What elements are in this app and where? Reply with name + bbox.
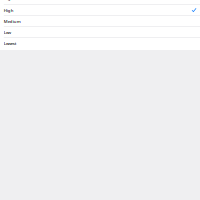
staticText: Highest xyxy=(4,0,20,1)
staticText: High xyxy=(4,7,14,13)
button[interactable]: Highest xyxy=(0,0,200,5)
button[interactable]: Low xyxy=(0,27,200,38)
button[interactable]: Lowest xyxy=(0,38,200,50)
staticText: Lowest xyxy=(4,40,17,46)
staticText: Low xyxy=(4,29,11,35)
button[interactable]: Medium xyxy=(0,16,200,27)
staticText: Medium xyxy=(4,18,21,24)
button[interactable]: High xyxy=(0,5,200,16)
